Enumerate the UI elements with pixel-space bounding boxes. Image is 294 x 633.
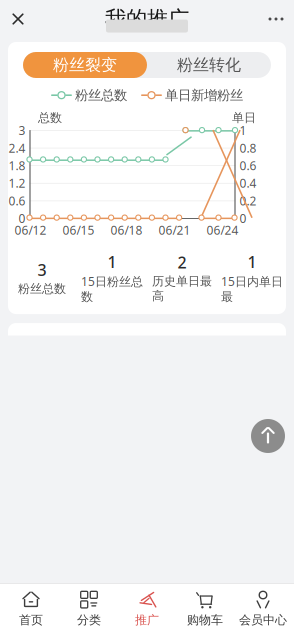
staticText: 单日 [232,110,256,125]
staticText: 0.2 [239,193,256,209]
staticText: 0.8 [239,140,256,156]
staticText: 粉丝裂变 [53,55,117,75]
staticText: 粉丝总数 [18,281,66,296]
staticText: 我的推广 [105,6,189,32]
button[interactable]: 推广 [118,584,176,633]
staticText: 2 [177,252,186,273]
staticText: 总数 [38,110,62,125]
staticText: 06/15 [62,222,94,238]
staticText: 分类 [77,613,101,627]
staticText: 历史单日最高 [152,274,212,303]
staticText: 0.6 [8,193,25,209]
staticText: 15日内单日最 [221,273,283,304]
staticText: 0 [18,210,25,226]
staticText: 1 [107,251,116,272]
staticText: 1.2 [8,175,25,191]
button[interactable]: 首页 [2,584,60,633]
button[interactable]: 推广粉丝 [147,403,286,430]
button[interactable]: 分类 [60,584,118,633]
staticText: 0 [270,442,277,458]
button[interactable]: 粉丝裂变 [23,52,147,78]
staticText: 06/24 [206,222,238,238]
staticText: 会员中心 [239,613,287,627]
staticText: 购物车 [187,613,223,627]
staticText: 0.6 [239,158,256,173]
staticText: ¥0 [263,569,277,585]
staticText: 2022-01-04 10:35:58 [57,580,172,596]
staticText: 1 [239,122,246,138]
staticText: 3 [18,122,25,138]
staticText: 3 [37,259,46,280]
button[interactable]: 深度科技-柚子 [8,544,286,589]
staticText: 支付订单总额: [185,569,263,585]
staticText: 06/21 [158,222,190,238]
button[interactable]: 二维码 [8,323,65,394]
button[interactable]: 购物车 [176,584,234,633]
staticText: 15日粉丝总数 [81,273,143,304]
staticText: 推广 [135,613,159,627]
button[interactable]: 更多 [258,1,294,37]
staticText: 1.8 [8,158,25,173]
staticText: 粉丝转化 [177,55,241,75]
staticText: 0.4 [239,175,256,191]
button[interactable]: 回到顶部 [251,419,285,453]
button[interactable]: 关闭 [0,1,36,37]
button[interactable]: 会员中心 [234,584,292,633]
staticText: 粉丝总数 [75,87,127,103]
button[interactable]: EE [8,438,286,483]
staticText: 06/12 [14,222,46,238]
staticText: 2.4 [8,140,25,156]
staticText: 首页 [19,613,43,627]
staticText: 06/18 [110,222,142,238]
staticText: 单日新增粉丝 [165,87,243,103]
button[interactable]: 粉丝转化 [147,52,271,78]
staticText: 1 [247,251,256,272]
staticText: 0 [239,210,246,226]
staticText: 支付订单数: [204,442,270,458]
